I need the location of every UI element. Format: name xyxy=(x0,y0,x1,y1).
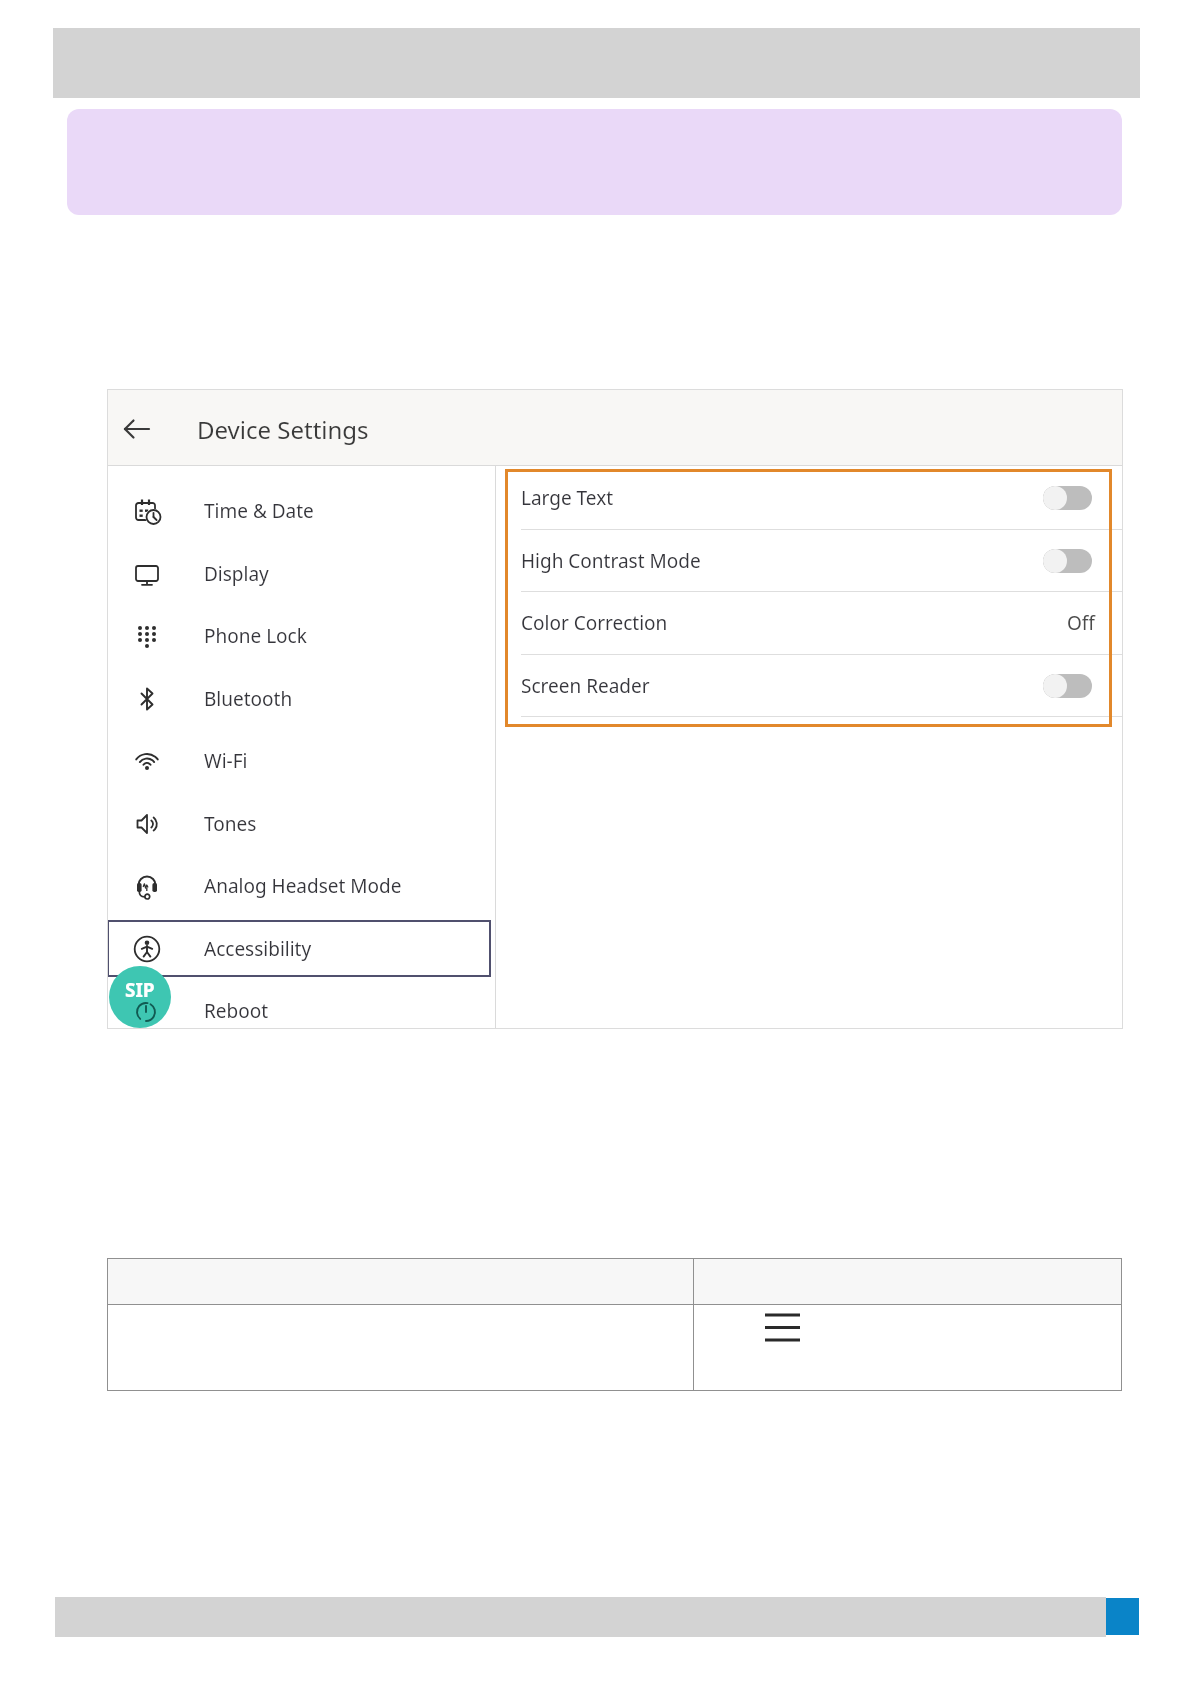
button[interactable] xyxy=(762,1308,804,1350)
button[interactable] xyxy=(107,543,495,605)
button[interactable] xyxy=(505,655,1123,717)
staticText: Wi-Fi xyxy=(204,748,248,774)
button[interactable] xyxy=(1043,549,1092,573)
staticText: Tones xyxy=(204,811,257,837)
staticText: Phone Lock xyxy=(204,623,307,649)
button[interactable] xyxy=(107,918,495,980)
staticText: Display xyxy=(204,561,269,587)
staticText: Large Text xyxy=(521,485,614,511)
staticText: SIP xyxy=(125,977,155,1003)
staticText: Time & Date xyxy=(204,498,314,524)
button[interactable] xyxy=(505,467,1123,529)
staticText: Off xyxy=(1067,610,1095,636)
staticText: Analog Headset Mode xyxy=(204,873,402,899)
button[interactable] xyxy=(107,668,495,730)
staticText: Accessibility xyxy=(204,936,312,962)
button[interactable] xyxy=(505,592,1123,654)
staticText: Screen Reader xyxy=(521,673,650,699)
button[interactable] xyxy=(107,605,495,667)
staticText: Reboot xyxy=(204,998,269,1024)
staticText: High Contrast Mode xyxy=(521,548,701,574)
button[interactable] xyxy=(107,730,495,792)
staticText: Device Settings xyxy=(197,413,369,446)
button[interactable] xyxy=(1043,486,1092,510)
button[interactable] xyxy=(107,480,495,542)
button[interactable] xyxy=(505,530,1123,592)
button[interactable] xyxy=(107,980,495,1042)
button[interactable] xyxy=(107,793,495,855)
staticText: Bluetooth xyxy=(204,686,293,712)
button[interactable] xyxy=(1043,674,1092,698)
button[interactable] xyxy=(122,415,152,445)
button[interactable] xyxy=(107,855,495,917)
staticText: Color Correction xyxy=(521,610,668,636)
